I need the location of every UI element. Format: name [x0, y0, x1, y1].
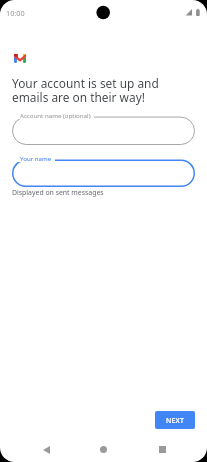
- button[interactable]: Account name (optional): [12, 113, 195, 145]
- button[interactable]: Back: [38, 442, 54, 458]
- staticText: Account name (optional): [20, 111, 91, 119]
- staticText: 10:00: [6, 8, 25, 18]
- staticText: Displayed on sent messages: [12, 188, 104, 197]
- button[interactable]: Recent apps: [154, 441, 170, 457]
- staticText: NEXT: [166, 416, 185, 425]
- staticText: Your name: [20, 154, 52, 162]
- button[interactable]: Your name: [12, 156, 195, 187]
- button[interactable]: Home: [95, 441, 111, 457]
- staticText: Your account is set up and emails are on…: [12, 75, 159, 105]
- button[interactable]: NEXT: [155, 411, 195, 429]
